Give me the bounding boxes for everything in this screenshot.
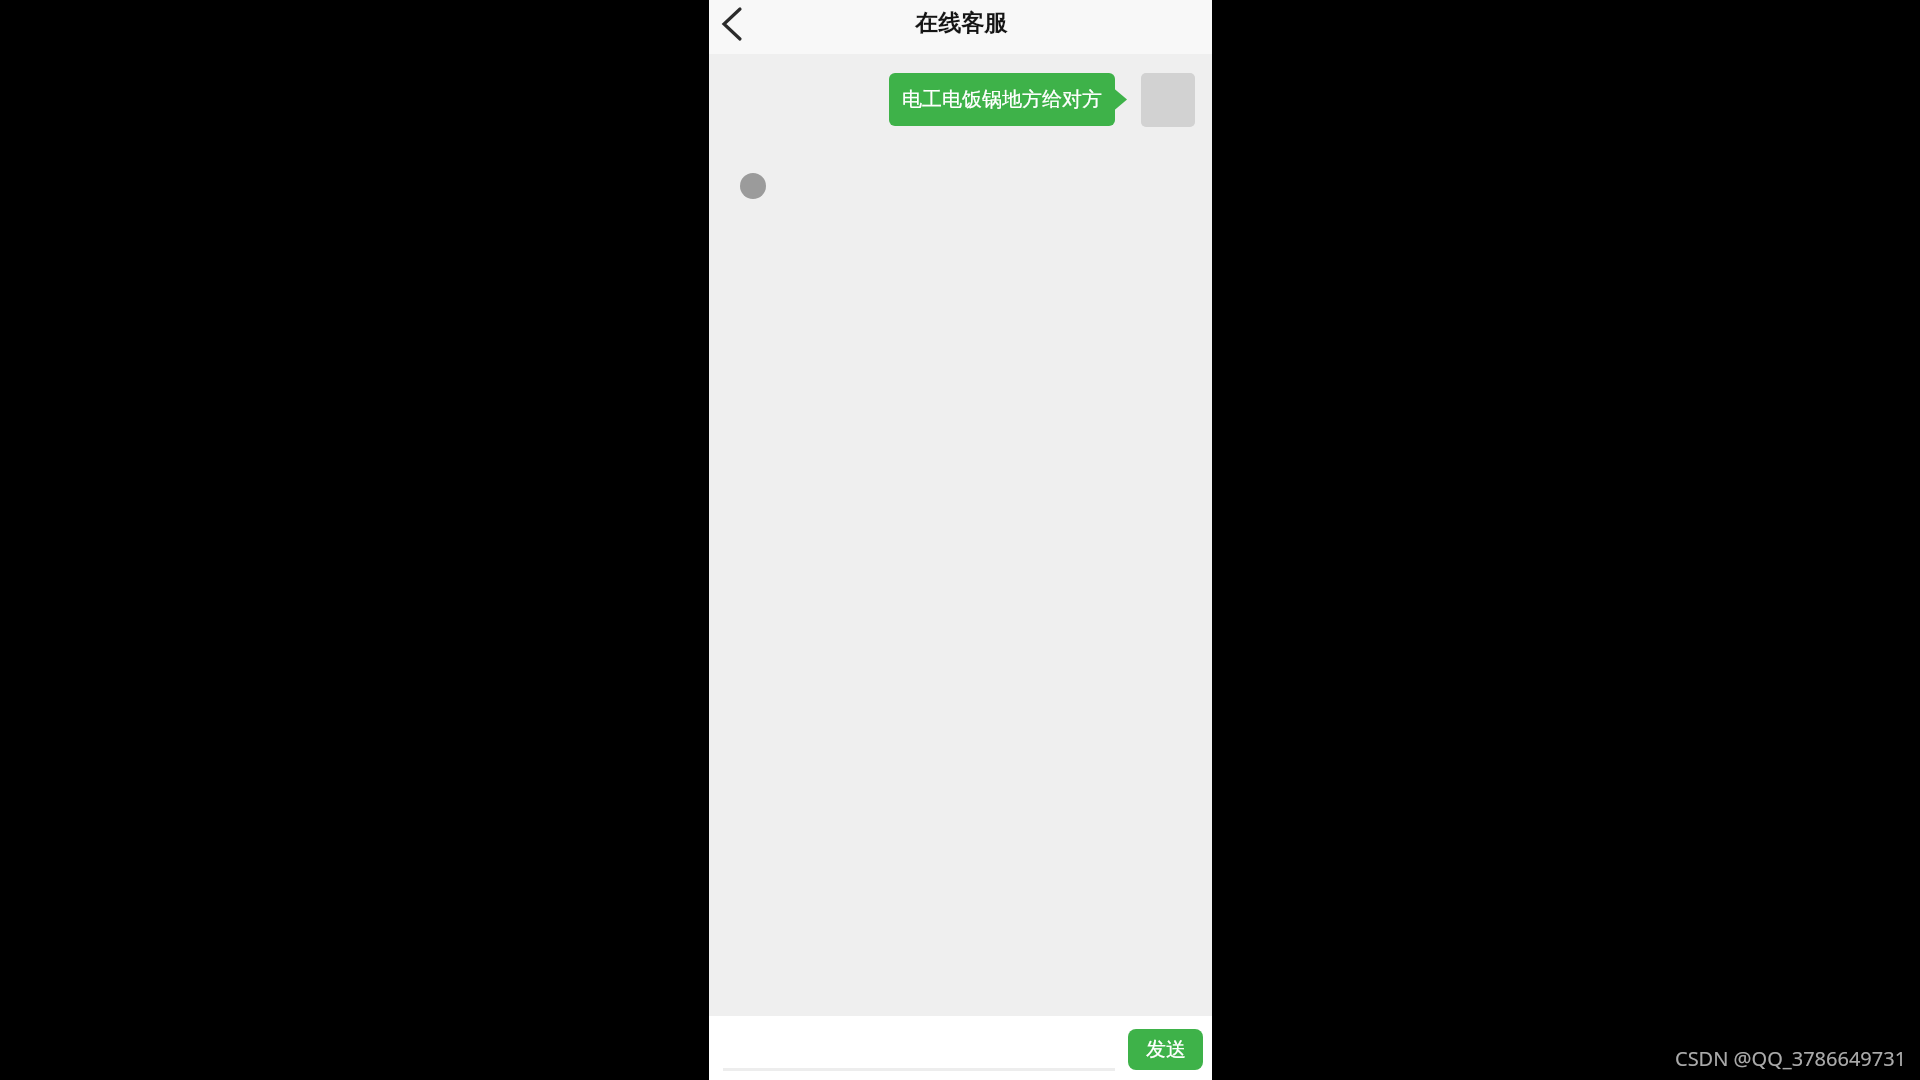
staticText: CSDN @QQ_3786649731 xyxy=(1675,1045,1907,1072)
button[interactable] xyxy=(712,4,752,44)
staticText: 电工电饭锅地方给对方 xyxy=(902,87,1102,112)
button[interactable]: 发送 xyxy=(1128,1029,1203,1070)
button[interactable]: 电工电饭锅地方给对方 xyxy=(889,73,1115,126)
staticText: 在线客服 xyxy=(915,9,1007,38)
staticText: 发送 xyxy=(1146,1037,1186,1062)
